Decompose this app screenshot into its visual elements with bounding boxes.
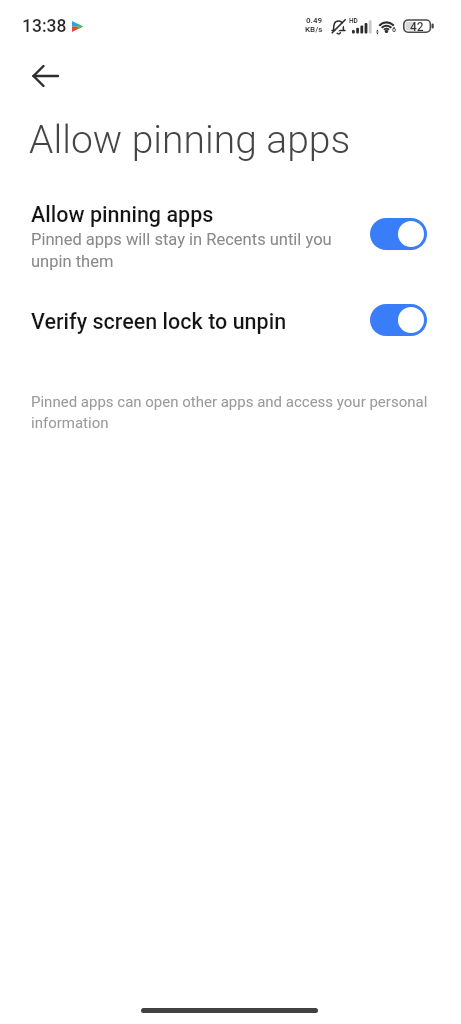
staticText: KB/s xyxy=(305,25,323,34)
button[interactable]: Allow pinning apps xyxy=(0,192,461,276)
staticText: Pinned apps will stay in Recents until y… xyxy=(31,230,366,271)
staticText: Verify screen lock to unpin xyxy=(31,309,287,334)
staticText: 6 xyxy=(392,26,397,34)
staticText: HD xyxy=(349,17,358,25)
staticText: Allow pinning apps xyxy=(29,117,351,163)
staticText: 42 xyxy=(410,20,424,34)
button[interactable] xyxy=(370,304,427,336)
staticText: 0.49 xyxy=(306,16,323,25)
button[interactable] xyxy=(370,218,427,250)
button[interactable]: Verify screen lock to unpin xyxy=(0,296,461,344)
staticText: Allow pinning apps xyxy=(31,202,214,227)
button[interactable] xyxy=(18,54,72,98)
staticText: Pinned apps can open other apps and acce… xyxy=(31,393,431,432)
staticText: 13:38 xyxy=(22,16,67,37)
